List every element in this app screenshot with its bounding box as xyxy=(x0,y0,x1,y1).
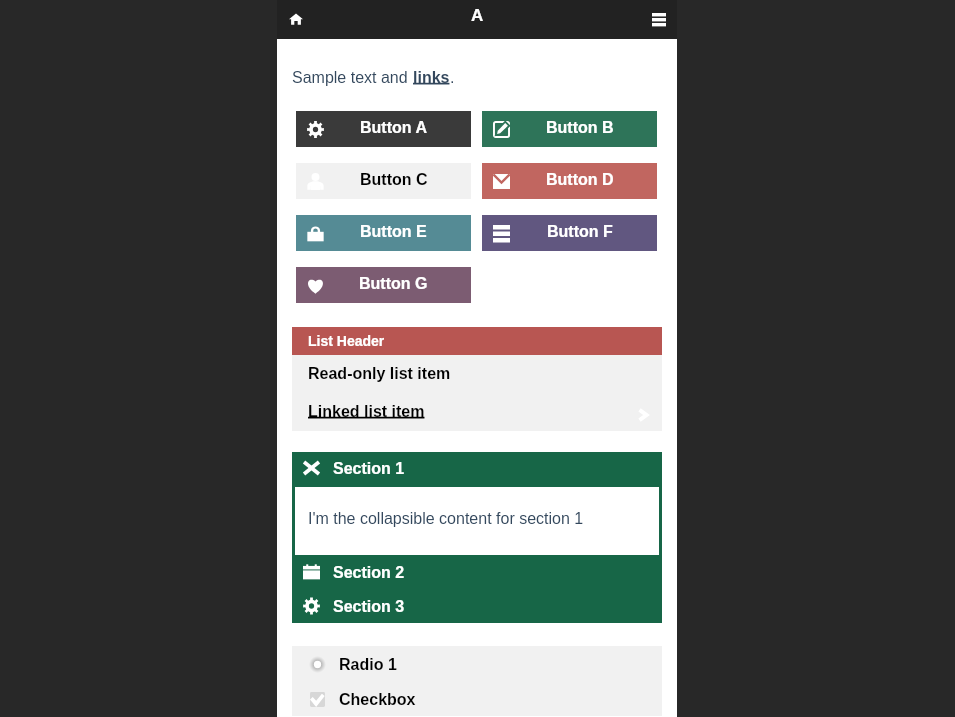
staticText: Linked list item xyxy=(308,403,425,421)
staticText: Button C xyxy=(360,171,428,189)
staticText: Section 1 xyxy=(333,460,405,478)
staticText: Read-only list item xyxy=(308,365,451,383)
staticText: Button F xyxy=(547,223,613,241)
button[interactable]: Button C xyxy=(296,163,471,199)
staticText: List Header xyxy=(308,333,385,349)
button[interactable]: Section 1 xyxy=(292,452,662,487)
button[interactable]: Radio 1 xyxy=(292,646,662,681)
button[interactable]: Button D xyxy=(482,163,657,199)
staticText: A xyxy=(471,6,484,25)
staticText: . xyxy=(450,69,455,87)
button[interactable]: Linked list item xyxy=(292,393,662,431)
staticText: Button E xyxy=(360,223,427,241)
staticText: Button D xyxy=(546,171,614,189)
button[interactable]: Section 2 xyxy=(292,555,662,589)
staticText: Radio 1 xyxy=(339,656,397,674)
button[interactable]: Button B xyxy=(482,111,657,147)
button[interactable]: Button F xyxy=(482,215,657,251)
staticText: Button A xyxy=(360,119,427,137)
button[interactable]: Menu xyxy=(644,4,674,34)
button[interactable]: Checkbox xyxy=(292,681,662,716)
button[interactable]: links xyxy=(413,69,450,87)
button[interactable]: Home xyxy=(281,4,311,34)
button[interactable]: Section 3 xyxy=(292,589,662,623)
staticText: Section 2 xyxy=(333,564,405,582)
staticText: Section 3 xyxy=(333,598,405,616)
staticText: I'm the collapsible content for section … xyxy=(308,510,584,528)
staticText: Button B xyxy=(546,119,614,137)
button[interactable]: Button G xyxy=(296,267,471,303)
staticText: Button G xyxy=(359,275,428,293)
button[interactable]: Button A xyxy=(296,111,471,147)
staticText: Checkbox xyxy=(339,691,416,709)
button[interactable]: Button E xyxy=(296,215,471,251)
staticText: Sample text and xyxy=(292,69,413,87)
